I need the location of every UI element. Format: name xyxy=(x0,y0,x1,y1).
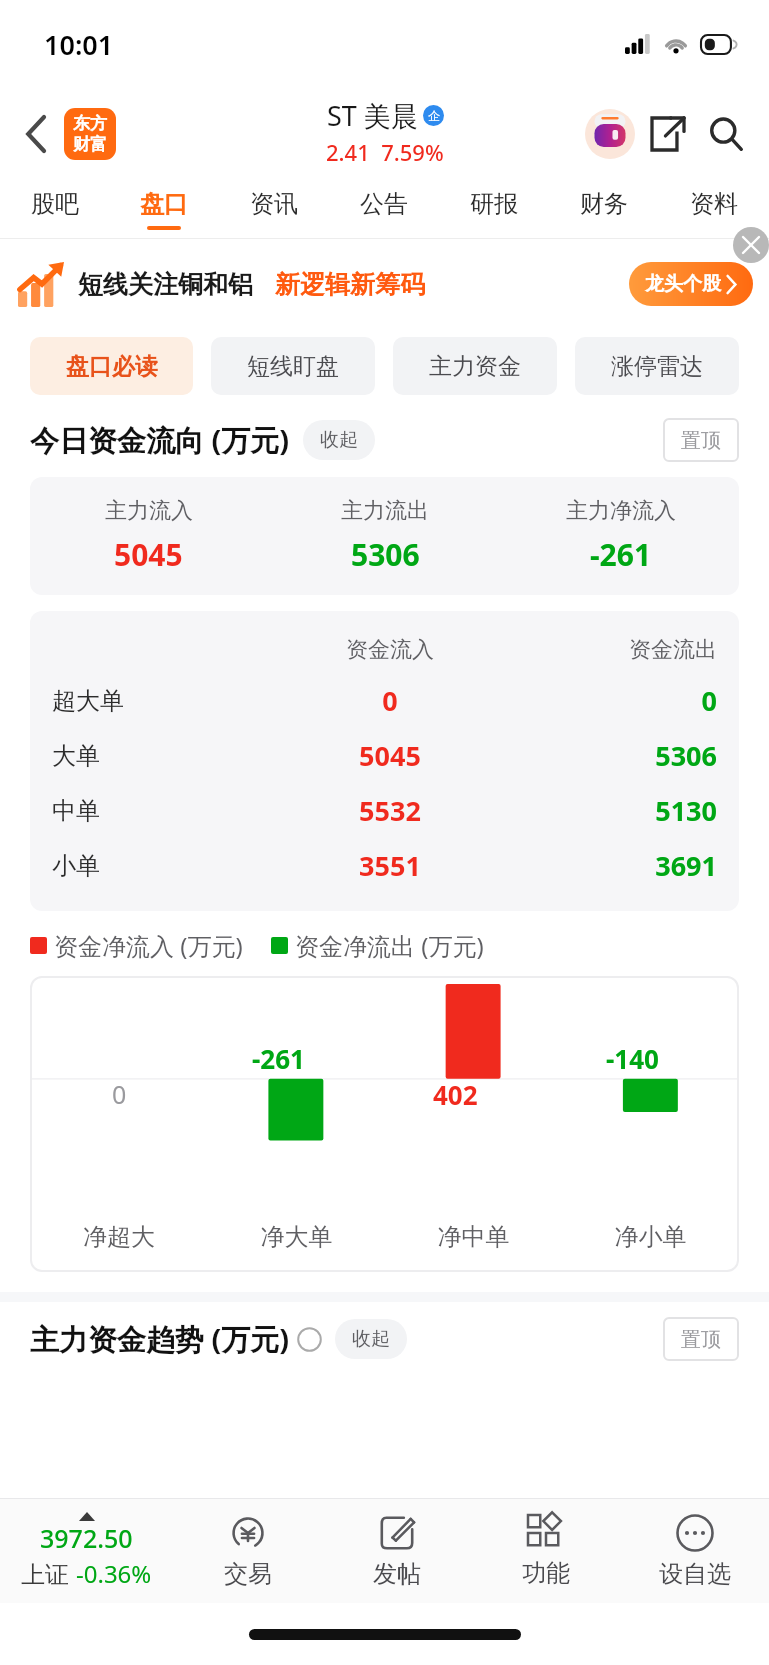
staticText: 大单 xyxy=(52,741,281,771)
staticText: 置顶 xyxy=(681,1327,721,1352)
staticText: 设自选 xyxy=(659,1559,731,1589)
staticText: 净小单 xyxy=(562,1222,739,1252)
staticText: 发帖 xyxy=(373,1559,421,1589)
staticText: 主力资金 xyxy=(429,352,521,381)
staticText: 净中单 xyxy=(385,1222,562,1252)
staticText: -261 xyxy=(590,534,652,575)
staticText: 3551 xyxy=(281,847,499,884)
staticText: 10:01 xyxy=(44,26,114,63)
button[interactable]: 资料 xyxy=(659,180,769,238)
staticText: 主力流出 xyxy=(341,497,429,525)
staticText: -140 xyxy=(606,1041,659,1076)
staticText: 短线关注铜和铝 xyxy=(78,269,253,300)
staticText: 主力净流入 xyxy=(566,497,676,525)
staticText: 资讯 xyxy=(250,189,298,219)
staticText: 资金流出 xyxy=(499,636,717,664)
button[interactable]: 置顶 xyxy=(663,1317,739,1361)
button[interactable]: Share xyxy=(639,105,697,163)
staticText: 5532 xyxy=(281,792,499,829)
staticText: 0 xyxy=(281,682,499,719)
staticText: 资料 xyxy=(690,189,738,219)
button[interactable]: AI assistant xyxy=(581,105,639,163)
staticText: 涨停雷达 xyxy=(611,352,703,381)
button[interactable]: 涨停雷达 xyxy=(575,337,739,395)
staticText: 主力流入 xyxy=(105,497,193,525)
staticText: 5130 xyxy=(499,792,717,829)
staticText: 5306 xyxy=(499,737,717,774)
staticText: 功能 xyxy=(522,1558,570,1588)
staticText: 企 xyxy=(428,108,440,123)
button[interactable]: 功能 xyxy=(471,1499,620,1603)
staticText: -261 xyxy=(252,1041,305,1076)
button[interactable]: 盘口必读 xyxy=(30,337,193,395)
staticText: 资金净流出 (万元) xyxy=(295,929,484,962)
staticText: 资金流入 xyxy=(281,636,499,664)
staticText: 收起 xyxy=(320,428,358,452)
staticText: 0 xyxy=(499,682,717,719)
staticText: 龙头个股 xyxy=(645,272,721,296)
button[interactable]: 盘口 xyxy=(109,180,219,238)
staticText: 小单 xyxy=(52,851,281,881)
staticText: 公告 xyxy=(360,189,408,219)
staticText: 主力资金趋势 (万元) xyxy=(30,1319,290,1359)
button[interactable]: 公告 xyxy=(329,180,439,238)
staticText: 股吧 xyxy=(31,189,79,219)
staticText: 盘口 xyxy=(140,189,188,219)
button[interactable]: 收起 xyxy=(303,420,375,460)
button[interactable]: 3972.50 xyxy=(0,1499,173,1603)
button[interactable]: 短线关注铜和铝 xyxy=(18,239,753,329)
staticText: 5045 xyxy=(114,534,183,575)
staticText: 3972.50 xyxy=(40,1521,133,1555)
button[interactable]: 短线盯盘 xyxy=(211,337,375,395)
staticText: 超大单 xyxy=(52,686,281,716)
staticText: 收起 xyxy=(352,1327,390,1351)
staticText: 研报 xyxy=(470,189,518,219)
staticText: 5045 xyxy=(281,737,499,774)
staticText: 2.41 7.59% xyxy=(326,137,444,167)
button[interactable]: 主力资金 xyxy=(393,337,557,395)
staticText: 东方 xyxy=(73,113,107,134)
button[interactable]: 设自选 xyxy=(620,1499,769,1603)
staticText: 5306 xyxy=(351,534,420,575)
button[interactable]: 发帖 xyxy=(322,1499,471,1603)
staticText: 交易 xyxy=(224,1559,272,1589)
staticText: 财富 xyxy=(73,134,107,155)
staticText: 财务 xyxy=(580,189,628,219)
button[interactable]: 龙头个股 xyxy=(629,262,753,306)
staticText: 盘口必读 xyxy=(66,352,158,381)
button[interactable]: 收起 xyxy=(335,1319,407,1359)
button[interactable]: Close ad xyxy=(733,227,769,263)
staticText: -0.36% xyxy=(76,1557,152,1590)
staticText: 置顶 xyxy=(681,428,721,453)
staticText: 短线盯盘 xyxy=(247,352,339,381)
staticText: ST 美晨 xyxy=(327,97,418,134)
staticText: 新逻辑新筹码 xyxy=(275,269,425,300)
button[interactable]: 财务 xyxy=(549,180,659,238)
button[interactable]: 资讯 xyxy=(219,180,329,238)
button[interactable]: 研报 xyxy=(439,180,549,238)
staticText: 净大单 xyxy=(208,1222,385,1252)
button[interactable]: East Money xyxy=(64,108,116,160)
staticText: 净超大 xyxy=(30,1222,208,1252)
button[interactable]: 股吧 xyxy=(0,180,109,238)
staticText: 上证 xyxy=(21,1557,76,1590)
button[interactable]: 置顶 xyxy=(663,418,739,462)
staticText: 今日资金流向 (万元) xyxy=(30,420,290,460)
button[interactable]: Search xyxy=(697,105,755,163)
staticText: 中单 xyxy=(52,796,281,826)
button[interactable]: 交易 xyxy=(173,1499,322,1603)
staticText: 0 xyxy=(112,1077,127,1111)
button[interactable]: Back xyxy=(10,107,64,161)
staticText: 资金净流入 (万元) xyxy=(54,929,243,962)
staticText: 402 xyxy=(433,1077,478,1112)
staticText: 3691 xyxy=(499,847,717,884)
